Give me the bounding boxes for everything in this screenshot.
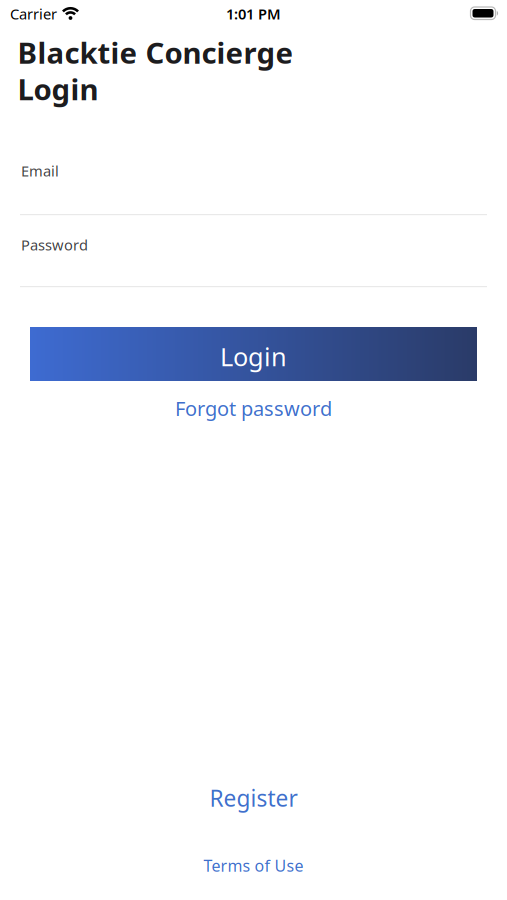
staticText: Blacktie Concierge (17, 33, 293, 72)
button[interactable]: Forgot password (175, 395, 332, 422)
staticText: 1:01 PM (226, 4, 281, 23)
staticText: Register (209, 783, 297, 813)
staticText: Carrier (10, 4, 57, 23)
staticText: Login (17, 69, 98, 108)
staticText: Forgot password (175, 395, 332, 422)
staticText: Terms of Use (203, 855, 303, 876)
staticText: Password (21, 235, 88, 254)
staticText: Login (220, 340, 287, 373)
button[interactable]: Login (30, 327, 477, 381)
button[interactable]: Register (209, 783, 297, 813)
staticText: Email (21, 161, 59, 180)
button[interactable]: Terms of Use (203, 855, 303, 876)
